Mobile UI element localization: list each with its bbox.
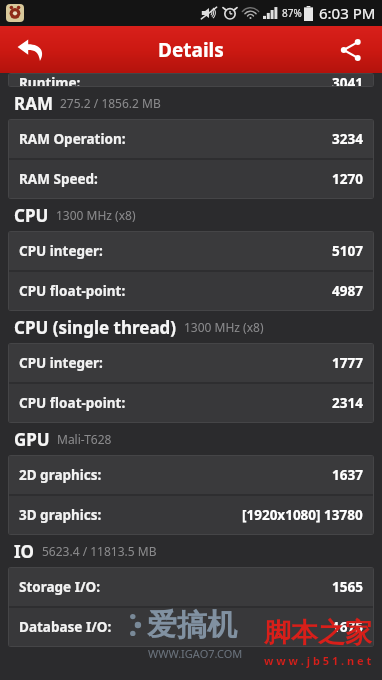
- staticText: 3D graphics:: [19, 506, 102, 524]
- button[interactable]: CPU float-point:: [9, 384, 373, 422]
- staticText: 1637: [332, 466, 363, 484]
- staticText: WWW.IGAO7.COM: [148, 646, 243, 661]
- staticText: IO: [14, 540, 35, 563]
- button[interactable]: Share: [320, 26, 382, 73]
- staticText: 5107: [332, 242, 363, 260]
- button[interactable]: Runtime:: [9, 74, 373, 86]
- staticText: [1920x1080] 13780: [242, 506, 363, 524]
- staticText: CPU float-point:: [19, 282, 126, 300]
- staticText: 爱搞机: [147, 606, 237, 644]
- staticText: 1777: [332, 354, 363, 372]
- staticText: 脚本之家: [264, 616, 372, 650]
- staticText: Runtime:: [19, 74, 81, 86]
- staticText: 2314: [332, 394, 363, 412]
- staticText: 3234: [332, 130, 363, 148]
- staticText: 1300 MHz (x8): [184, 319, 264, 335]
- button[interactable]: Back: [0, 26, 62, 73]
- staticText: CPU: [14, 204, 49, 227]
- button[interactable]: CPU float-point:: [9, 272, 373, 310]
- staticText: 3041: [332, 74, 363, 86]
- staticText: RAM Speed:: [19, 170, 98, 188]
- staticText: RAM Operation:: [19, 130, 126, 148]
- staticText: 6:03 PM: [319, 3, 376, 23]
- staticText: CPU (single thread): [14, 316, 177, 339]
- staticText: 87%: [282, 6, 302, 20]
- button[interactable]: 2D graphics:: [9, 456, 373, 494]
- button[interactable]: Database I/O:: [9, 608, 373, 646]
- staticText: 1300 MHz (x8): [56, 207, 136, 223]
- staticText: 275.2 / 1856.2 MB: [60, 95, 161, 111]
- staticText: 1675: [332, 618, 363, 636]
- staticText: 5623.4 / 11813.5 MB: [42, 543, 157, 559]
- staticText: CPU float-point:: [19, 394, 126, 412]
- staticText: CPU integer:: [19, 242, 103, 260]
- staticText: Mali-T628: [57, 431, 112, 447]
- staticText: w w w . j b 5 1 . n e t: [264, 653, 372, 668]
- staticText: GPU: [14, 428, 50, 451]
- staticText: Details: [158, 37, 224, 63]
- button[interactable]: Storage I/O:: [9, 568, 373, 606]
- staticText: 1565: [332, 578, 363, 596]
- staticText: 4987: [332, 282, 363, 300]
- button[interactable]: CPU integer:: [9, 344, 373, 382]
- staticText: Database I/O:: [19, 618, 112, 636]
- button[interactable]: CPU integer:: [9, 232, 373, 270]
- button[interactable]: RAM Speed:: [9, 160, 373, 198]
- staticText: 1270: [332, 170, 363, 188]
- staticText: 2D graphics:: [19, 466, 102, 484]
- button[interactable]: 3D graphics:: [9, 496, 373, 534]
- staticText: RAM: [14, 92, 53, 115]
- button[interactable]: RAM Operation:: [9, 120, 373, 158]
- staticText: CPU integer:: [19, 354, 103, 372]
- staticText: Storage I/O:: [19, 578, 101, 596]
